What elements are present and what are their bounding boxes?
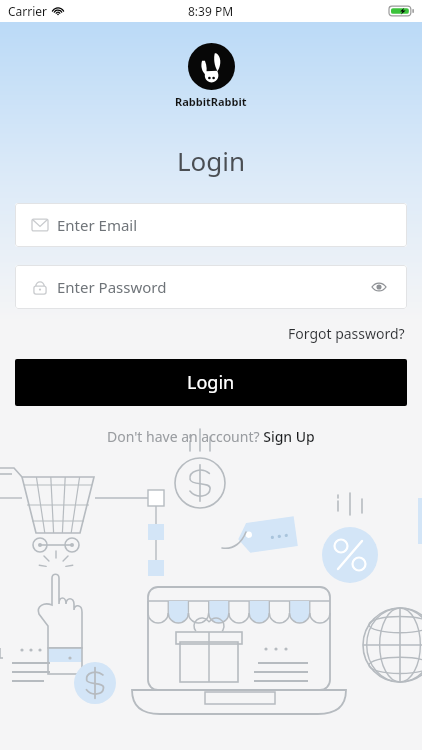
button[interactable]: Don't have an account? Sign Up [103, 423, 319, 450]
staticText: Enter Email [57, 215, 138, 235]
staticText: Login [0, 143, 422, 178]
staticText: Don't have an account? Sign Up [107, 427, 315, 446]
staticText: RabbitRabbit [175, 94, 247, 109]
button[interactable]: Show password [368, 276, 390, 298]
button[interactable]: Enter Password [15, 265, 407, 309]
button[interactable]: Forgot password? [286, 322, 407, 345]
staticText: Enter Password [57, 277, 167, 297]
staticText: Carrier [8, 3, 48, 19]
staticText: Login [187, 370, 235, 395]
button[interactable]: Login [15, 359, 407, 406]
button[interactable]: Enter Email [15, 203, 407, 247]
staticText: 8:39 PM [188, 3, 234, 19]
staticText: Forgot password? [288, 324, 405, 343]
